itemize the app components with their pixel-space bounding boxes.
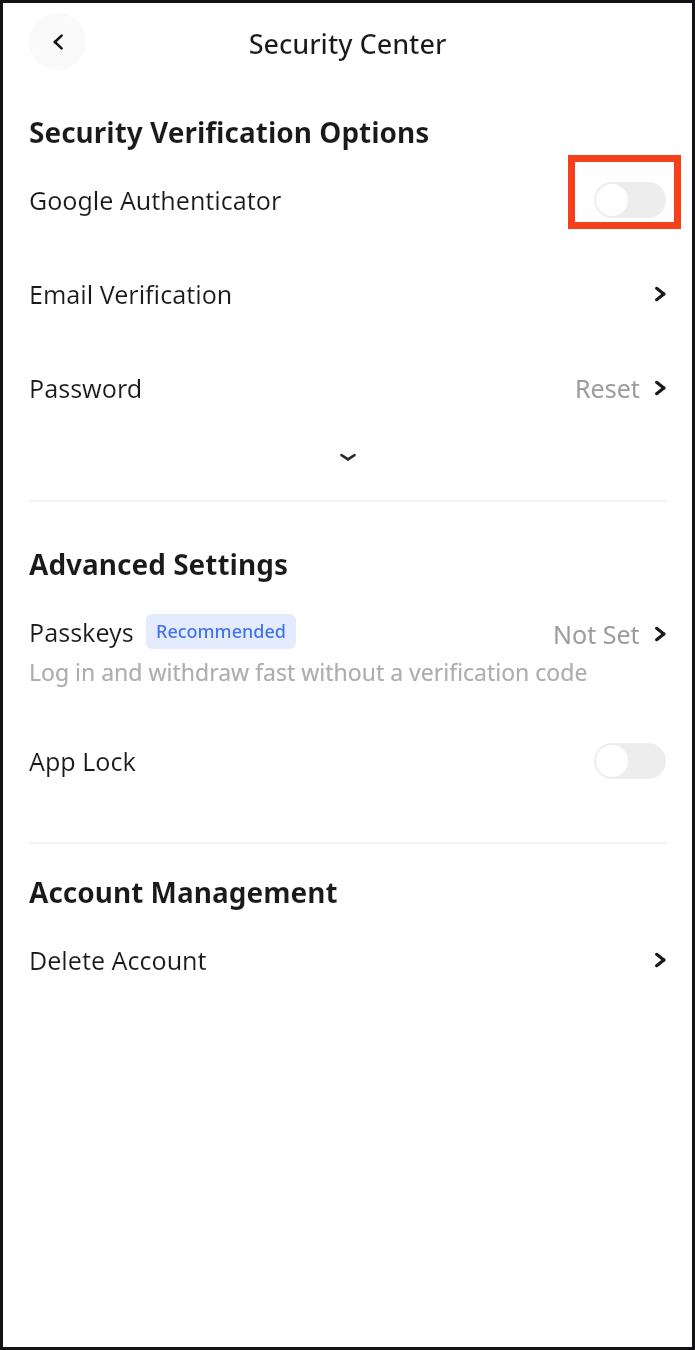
button[interactable]: Back bbox=[29, 13, 86, 70]
button[interactable]: Email Verification bbox=[3, 265, 692, 322]
button[interactable] bbox=[594, 743, 666, 779]
button[interactable]: Passkeys bbox=[3, 603, 692, 691]
button[interactable]: Password bbox=[3, 359, 692, 416]
button[interactable] bbox=[594, 182, 666, 218]
staticText: Password bbox=[29, 371, 143, 405]
staticText: Not Set bbox=[553, 617, 640, 651]
staticText: Security Verification Options bbox=[29, 113, 430, 151]
staticText: Email Verification bbox=[29, 277, 233, 311]
staticText: Reset bbox=[575, 371, 640, 405]
button[interactable]: Google Authenticator bbox=[3, 169, 692, 231]
staticText: Google Authenticator bbox=[29, 183, 282, 217]
staticText: Delete Account bbox=[29, 943, 207, 977]
button[interactable]: App Lock bbox=[3, 731, 692, 791]
staticText: Account Management bbox=[29, 873, 338, 911]
staticText: Advanced Settings bbox=[29, 545, 288, 583]
staticText: Passkeys bbox=[29, 615, 134, 649]
button[interactable]: Expand more bbox=[3, 431, 692, 483]
button[interactable]: Delete Account bbox=[3, 931, 692, 988]
staticText: Security Center bbox=[3, 25, 692, 62]
staticText: Log in and withdraw fast without a verif… bbox=[29, 656, 588, 687]
staticText: Recommended bbox=[156, 619, 286, 644]
staticText: App Lock bbox=[29, 744, 136, 778]
